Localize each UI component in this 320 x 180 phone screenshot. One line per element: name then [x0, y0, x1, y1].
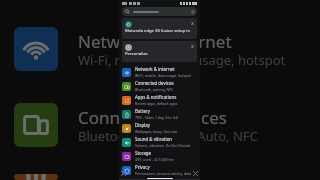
button[interactable]: Dismiss [122, 18, 197, 39]
button[interactable]: Apps & notifications [122, 93, 197, 107]
staticText: Permissions, account activity, data [135, 171, 192, 176]
staticText: Network & internet [135, 66, 175, 72]
staticText: Apps & notifications [135, 94, 177, 100]
staticText: Personalize [125, 51, 148, 57]
staticText: Display [135, 122, 150, 128]
other: Dismiss [191, 21, 194, 26]
button[interactable]: Storage [122, 149, 197, 163]
staticText: Network & internet [78, 30, 232, 48]
staticText: Wi-Fi, mobile, data usage, hotspot [135, 73, 191, 78]
button[interactable]: Connected devices [0, 98, 320, 152]
button[interactable]: Network & internet [122, 65, 197, 79]
staticText: Wallpaper, sleep, font size [135, 129, 178, 134]
button[interactable]: Display [122, 121, 197, 135]
other: Search [125, 9, 130, 14]
staticText: Connected devices [135, 80, 174, 86]
button[interactable]: Connected devices [122, 79, 197, 93]
button[interactable]: Privacy [122, 163, 197, 177]
staticText: Storage [135, 150, 152, 156]
button[interactable]: Network & internet [0, 22, 320, 76]
staticText: 49% used - 32.5 GB free [135, 157, 174, 162]
button[interactable]: Dismiss [122, 41, 197, 62]
staticText: Connected devices [78, 106, 228, 124]
button[interactable]: Apps & notifications [0, 174, 320, 180]
other: Dismiss [191, 44, 194, 49]
staticText: 70% - Takes 1 day, 6 hr left [135, 115, 179, 120]
staticText: Bluetooth, pairing, NFC [135, 87, 174, 92]
staticText: Bluetooth, Android Auto, NFC [78, 127, 258, 145]
staticText: Sound & vibration [135, 136, 173, 142]
staticText: Battery [135, 108, 151, 114]
staticText: Volume, vibration, Do Not Disturb [135, 143, 191, 148]
button[interactable]: Battery [122, 107, 197, 121]
button[interactable]: Home [147, 178, 173, 180]
staticText: Recent apps, default apps [135, 101, 178, 106]
button[interactable]: Search [122, 7, 197, 16]
button[interactable]: Sound & vibration [122, 135, 197, 149]
staticText: Motorola edge 30 fusion setup in progres… [125, 28, 194, 34]
staticText: Apps & notifications [78, 174, 238, 180]
staticText: Privacy [135, 164, 150, 170]
staticText: Wi-Fi, mobile, data usage, hotspot [78, 51, 286, 69]
